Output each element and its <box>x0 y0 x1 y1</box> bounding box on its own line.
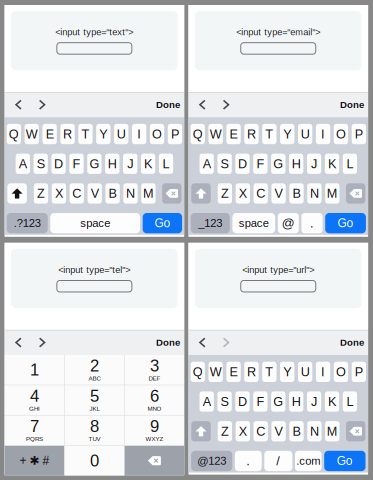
button[interactable]: Y <box>280 124 294 144</box>
button[interactable]: Previous field <box>191 330 214 354</box>
button[interactable]: X <box>236 421 250 441</box>
button[interactable]: H <box>289 154 303 174</box>
button[interactable]: Y <box>280 362 294 382</box>
button[interactable]: D <box>235 391 250 412</box>
button[interactable]: U <box>114 124 128 144</box>
button[interactable]: E <box>226 124 241 144</box>
button[interactable]: @ <box>278 213 299 233</box>
button[interactable]: M <box>325 183 339 204</box>
button[interactable]: J <box>307 154 321 174</box>
button[interactable]: Shift <box>7 183 27 204</box>
button[interactable]: .com <box>295 451 322 471</box>
button[interactable]: 4 <box>5 385 64 415</box>
button[interactable]: R <box>244 124 259 144</box>
button[interactable]: I <box>316 124 330 144</box>
button[interactable]: 3 <box>125 355 184 385</box>
button[interactable]: 7 <box>5 416 64 445</box>
button[interactable]: Z <box>218 421 232 441</box>
button[interactable]: Z <box>218 183 232 204</box>
button[interactable]: V <box>271 183 286 204</box>
button[interactable]: _123 <box>191 213 230 233</box>
button[interactable]: Done <box>340 330 368 354</box>
button[interactable]: W <box>25 124 39 144</box>
button[interactable]: L <box>343 154 357 174</box>
button[interactable]: 9 <box>125 416 184 445</box>
button[interactable]: C <box>254 421 268 441</box>
button[interactable]: 1 <box>5 355 64 385</box>
button[interactable]: G <box>271 391 285 412</box>
button[interactable]: Delete <box>162 183 181 204</box>
button[interactable]: S <box>33 154 48 174</box>
button[interactable]: B <box>289 421 304 441</box>
button[interactable]: P <box>168 124 182 144</box>
button[interactable]: N <box>123 183 138 204</box>
button[interactable]: J <box>123 154 137 174</box>
button[interactable]: S <box>217 391 232 412</box>
button[interactable]: Previous field <box>7 93 30 117</box>
button[interactable]: Shift <box>191 421 211 441</box>
button[interactable]: H <box>105 154 119 174</box>
button[interactable]: C <box>70 183 84 204</box>
button[interactable]: Go <box>325 213 366 233</box>
button[interactable]: B <box>105 183 120 204</box>
button[interactable]: Previous field <box>7 330 30 354</box>
button[interactable]: / <box>264 451 292 471</box>
button[interactable]: A <box>200 391 214 412</box>
button[interactable]: C <box>254 183 268 204</box>
button[interactable]: R <box>60 124 75 144</box>
button[interactable]: Go <box>324 451 365 471</box>
button[interactable]: L <box>343 391 357 412</box>
button[interactable]: Q <box>7 124 21 144</box>
button[interactable]: B <box>289 183 304 204</box>
button[interactable]: L <box>159 154 173 174</box>
button[interactable]: Next field <box>214 93 238 117</box>
button[interactable]: Done <box>156 93 184 117</box>
button[interactable]: 8 <box>65 416 124 445</box>
button[interactable]: P <box>352 362 366 382</box>
button[interactable]: .?123 <box>7 213 48 233</box>
button[interactable]: X <box>52 183 66 204</box>
button[interactable]: Q <box>191 124 205 144</box>
button[interactable]: Next field <box>30 93 54 117</box>
button[interactable]: A <box>200 154 214 174</box>
button[interactable]: N <box>307 183 321 204</box>
button[interactable]: G <box>271 154 285 174</box>
button[interactable]: M <box>141 183 156 204</box>
button[interactable]: R <box>244 362 259 382</box>
button[interactable]: Done <box>340 93 368 117</box>
button[interactable]: M <box>325 421 339 441</box>
button[interactable]: . <box>235 451 262 471</box>
button[interactable]: H <box>289 391 303 412</box>
button[interactable]: D <box>51 154 66 174</box>
button[interactable]: U <box>298 362 312 382</box>
button[interactable]: Next field <box>214 330 238 354</box>
button[interactable]: space <box>232 213 275 233</box>
button[interactable]: T <box>262 362 276 382</box>
button[interactable]: 2 <box>65 355 124 385</box>
button[interactable]: . <box>301 213 323 233</box>
button[interactable]: Y <box>96 124 110 144</box>
button[interactable]: G <box>87 154 101 174</box>
button[interactable]: I <box>132 124 146 144</box>
button[interactable]: Delete <box>346 183 365 204</box>
button[interactable]: + ✱ # <box>5 446 64 475</box>
button[interactable]: N <box>307 421 321 441</box>
button[interactable]: T <box>262 124 276 144</box>
button[interactable]: O <box>150 124 164 144</box>
button[interactable]: V <box>88 183 102 204</box>
button[interactable]: K <box>141 154 155 174</box>
button[interactable]: Previous field <box>191 93 214 117</box>
button[interactable]: Delete <box>346 421 365 441</box>
button[interactable]: D <box>235 154 250 174</box>
button[interactable]: Shift <box>191 183 211 204</box>
button[interactable]: @123 <box>191 451 232 471</box>
button[interactable]: A <box>16 154 30 174</box>
button[interactable]: E <box>42 124 57 144</box>
button[interactable]: X <box>236 183 250 204</box>
button[interactable]: K <box>325 391 339 412</box>
button[interactable]: 0 <box>65 446 124 475</box>
button[interactable]: O <box>334 362 348 382</box>
button[interactable]: K <box>325 154 339 174</box>
button[interactable]: Delete <box>125 446 184 475</box>
button[interactable]: 6 <box>125 385 184 415</box>
